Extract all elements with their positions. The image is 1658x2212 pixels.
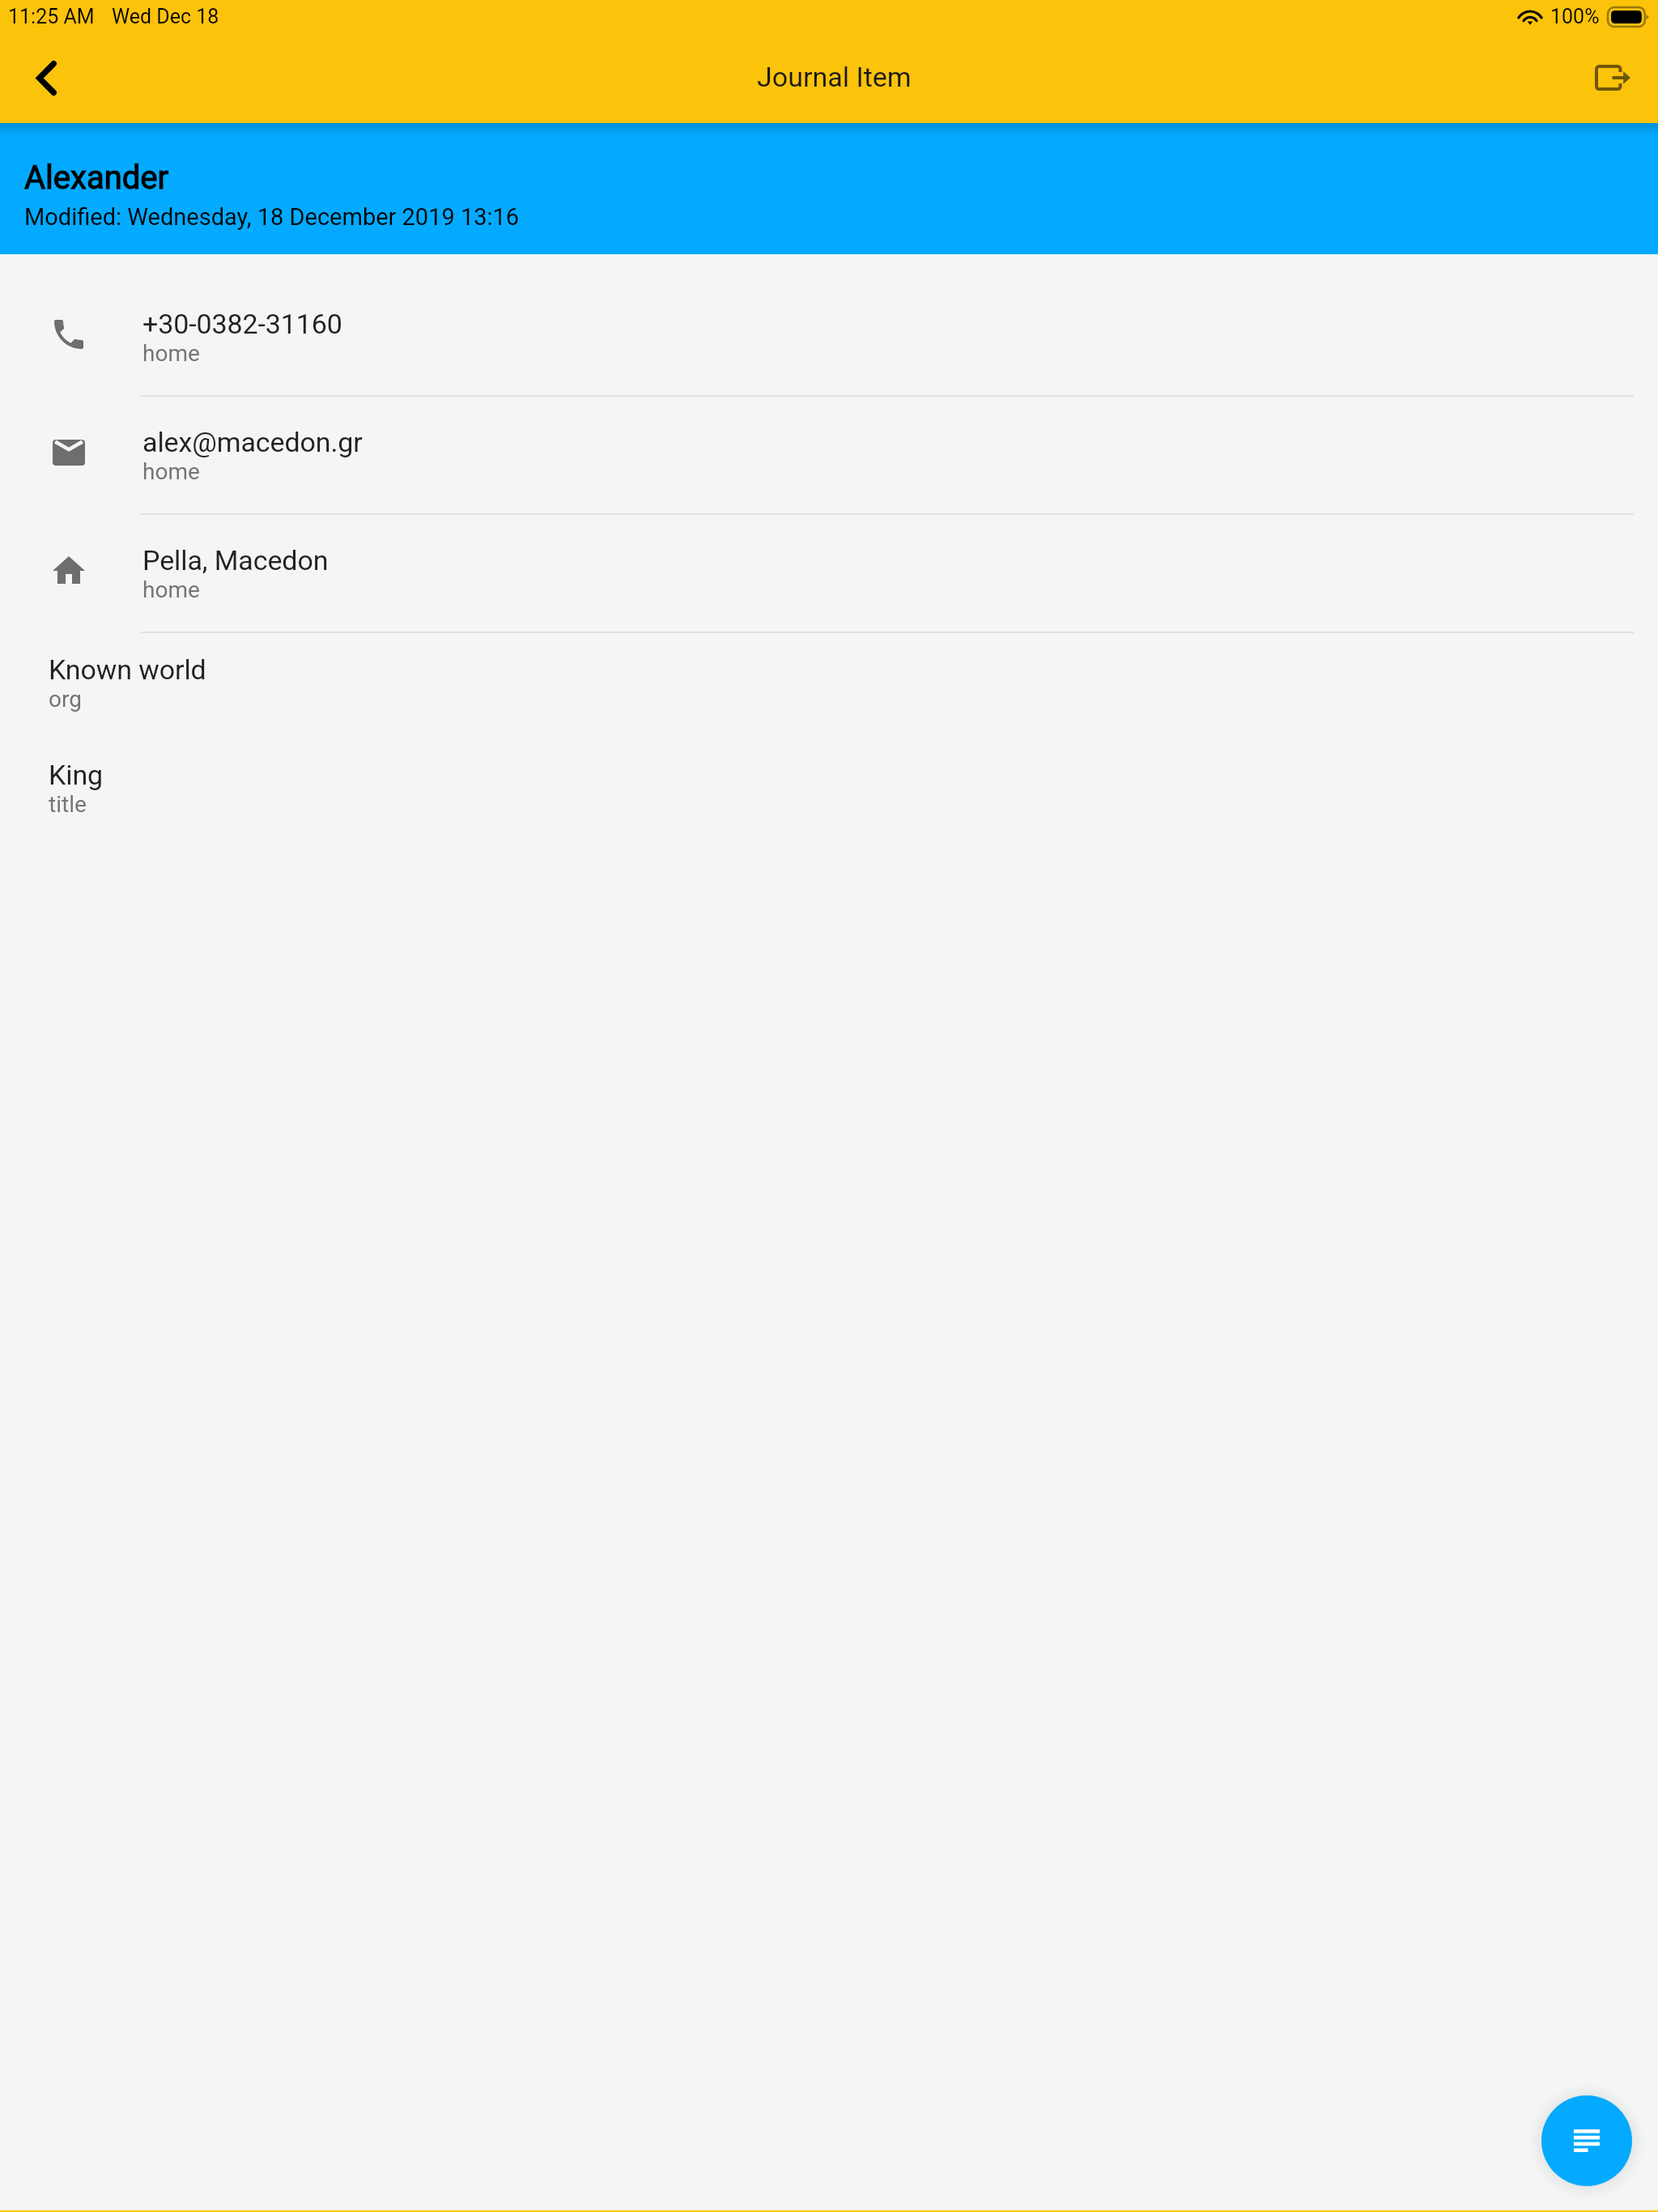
staticText: King: [49, 759, 104, 791]
staticText: Pella, Macedon: [142, 544, 329, 576]
staticText: Modified: Wednesday, 18 December 2019 13…: [24, 203, 520, 231]
button[interactable]: +30-0382-31160: [0, 279, 1658, 395]
staticText: Journal Item: [757, 61, 912, 93]
staticText: alex@macedon.gr: [142, 426, 363, 458]
button[interactable]: Logout: [1574, 39, 1652, 117]
staticText: Known world: [49, 653, 206, 686]
staticText: org: [49, 686, 82, 713]
button[interactable]: King: [0, 735, 1658, 840]
staticText: Alexander: [24, 159, 169, 197]
staticText: home: [142, 340, 200, 367]
staticText: home: [142, 458, 200, 485]
button[interactable]: Pella, Macedon: [0, 515, 1658, 632]
staticText: +30-0382-31160: [142, 308, 342, 340]
button[interactable]: Notes: [1541, 2095, 1632, 2186]
staticText: Wed Dec 18: [112, 5, 219, 28]
button[interactable]: Back: [7, 39, 85, 117]
staticText: 11:25 AM: [8, 5, 95, 28]
staticText: title: [49, 791, 87, 818]
staticText: home: [142, 576, 200, 603]
button[interactable]: alex@macedon.gr: [0, 397, 1658, 513]
button[interactable]: Known world: [0, 630, 1658, 735]
staticText: 100%: [1550, 5, 1600, 28]
